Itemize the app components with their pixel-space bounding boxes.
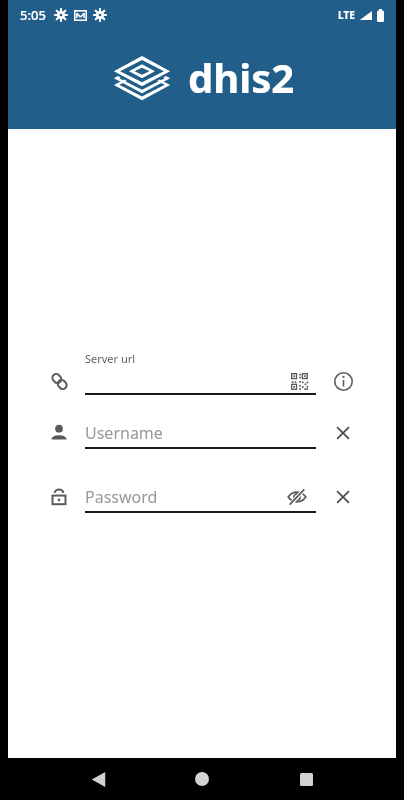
button[interactable]: Username xyxy=(46,420,72,446)
button[interactable]: Information xyxy=(329,367,357,395)
button[interactable]: Scan QR code xyxy=(286,368,312,394)
button[interactable]: Password xyxy=(46,484,72,510)
staticText: dhis2 xyxy=(188,50,295,104)
staticText: 5:05 xyxy=(20,6,46,24)
staticText: LTE xyxy=(338,8,355,22)
button[interactable]: Clear password xyxy=(329,483,357,511)
button[interactable]: Show password xyxy=(283,483,311,511)
button[interactable]: Home xyxy=(182,759,222,799)
button[interactable]: Recent apps xyxy=(286,759,326,799)
staticText: Password xyxy=(85,486,158,508)
staticText: Server url xyxy=(85,351,136,366)
staticText: Username xyxy=(85,422,163,444)
button[interactable]: Server url xyxy=(46,368,72,394)
button[interactable]: Back xyxy=(78,759,118,799)
button[interactable]: Clear username xyxy=(329,419,357,447)
